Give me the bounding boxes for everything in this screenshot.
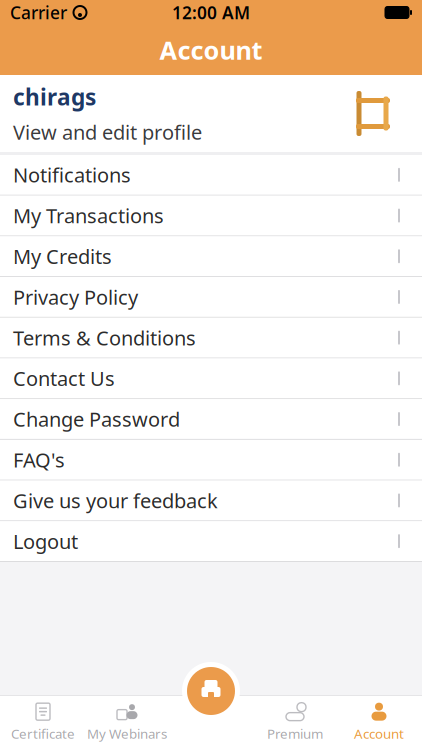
button[interactable]: Account	[337, 695, 421, 750]
staticText: Terms & Conditions	[13, 324, 196, 351]
staticText: Contact Us	[13, 365, 115, 392]
staticText: Certificate	[11, 725, 75, 742]
staticText: Change Password	[13, 406, 180, 432]
staticText: Logout	[13, 528, 78, 554]
staticText: Notifications	[13, 162, 131, 188]
button[interactable]: Notifications	[0, 155, 422, 195]
button[interactable]: Change Password	[0, 399, 422, 439]
staticText: View and edit profile	[13, 119, 202, 145]
button[interactable]: Give us your feedback	[0, 481, 422, 520]
button[interactable]: My Webinars	[85, 695, 169, 750]
button[interactable]: Premium	[253, 695, 337, 750]
staticText: My Webinars	[87, 725, 167, 742]
staticText: Carrier	[10, 1, 67, 24]
button[interactable]: FAQ's	[0, 440, 422, 480]
button[interactable]: Certificate	[1, 695, 85, 750]
staticText: My Transactions	[13, 202, 164, 229]
staticText: Account	[159, 33, 262, 67]
button[interactable]: chirags	[0, 75, 422, 152]
button[interactable]: Terms & Conditions	[0, 318, 422, 357]
staticText: 12:00 AM	[172, 1, 250, 24]
staticText: Account	[354, 725, 404, 742]
staticText: FAQ's	[13, 446, 65, 473]
button[interactable]: Privacy Policy	[0, 277, 422, 317]
button[interactable]: My Credits	[0, 236, 422, 276]
staticText: chirags	[13, 82, 96, 112]
staticText: Privacy Policy	[13, 284, 138, 310]
button[interactable]: Contact Us	[0, 358, 422, 398]
staticText: Premium	[267, 725, 323, 742]
button[interactable]: My Transactions	[0, 196, 422, 235]
staticText: My Credits	[13, 243, 112, 270]
staticText: Give us your feedback	[13, 487, 218, 514]
staticText	[67, 0, 73, 27]
button[interactable]: Home	[181, 661, 241, 721]
button[interactable]: Logout	[0, 521, 422, 561]
